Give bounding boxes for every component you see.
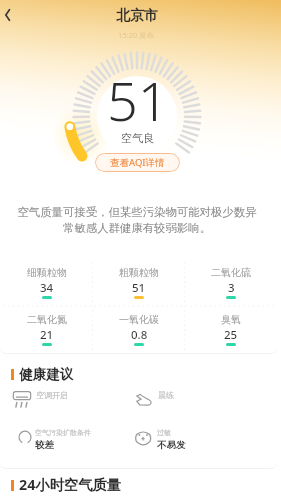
staticText: 25 xyxy=(224,327,238,343)
button[interactable]: 空调开启 xyxy=(13,390,68,410)
button[interactable]: 二氧化氮 xyxy=(0,306,93,353)
staticText: 北京市 xyxy=(116,7,158,25)
staticText: 51 xyxy=(132,280,146,296)
staticText: 粗颗粒物 xyxy=(119,266,159,279)
staticText: 不易发 xyxy=(157,439,186,451)
staticText: 细颗粒物 xyxy=(27,266,67,279)
staticText: 空调开启 xyxy=(36,390,68,400)
staticText: 51 xyxy=(107,63,169,137)
staticText: 晨练 xyxy=(158,390,174,400)
staticText: 0.8 xyxy=(131,327,148,343)
staticText: 空气质量可接受，但某些污染物可能对极少数异常敏感人群健康有较弱影响。 xyxy=(17,205,257,235)
button[interactable]: Back xyxy=(0,1,28,29)
staticText: 过敏 xyxy=(157,428,171,437)
staticText: 24小时空气质量 xyxy=(19,475,122,495)
button[interactable]: 二氧化硫 xyxy=(185,259,277,306)
button[interactable]: 粗颗粒物 xyxy=(93,259,185,306)
staticText: 健康建议 xyxy=(19,366,74,383)
staticText: 查看AQI详情 xyxy=(110,156,165,169)
button[interactable]: 晨练 xyxy=(135,390,174,410)
button[interactable]: 空气污染扩散条件 xyxy=(18,428,91,451)
staticText: 一氧化碳 xyxy=(119,313,159,326)
staticText: 臭氧 xyxy=(221,313,241,326)
button[interactable]: 查看AQI详情 xyxy=(95,153,180,172)
staticText: 空气污染扩散条件 xyxy=(35,428,91,437)
button[interactable]: 一氧化碳 xyxy=(93,306,185,353)
button[interactable]: 过敏 xyxy=(134,428,186,451)
staticText: 21 xyxy=(40,327,54,343)
staticText: 二氧化硫 xyxy=(211,266,251,279)
staticText: 3 xyxy=(228,280,235,296)
staticText: 空气良 xyxy=(121,131,154,145)
button[interactable]: 臭氧 xyxy=(185,306,277,353)
staticText: 较差 xyxy=(35,439,54,451)
staticText: 二氧化氮 xyxy=(27,313,67,326)
button[interactable]: 细颗粒物 xyxy=(0,259,93,306)
staticText: 15:20 发布 xyxy=(118,30,155,40)
staticText: 34 xyxy=(40,280,54,296)
